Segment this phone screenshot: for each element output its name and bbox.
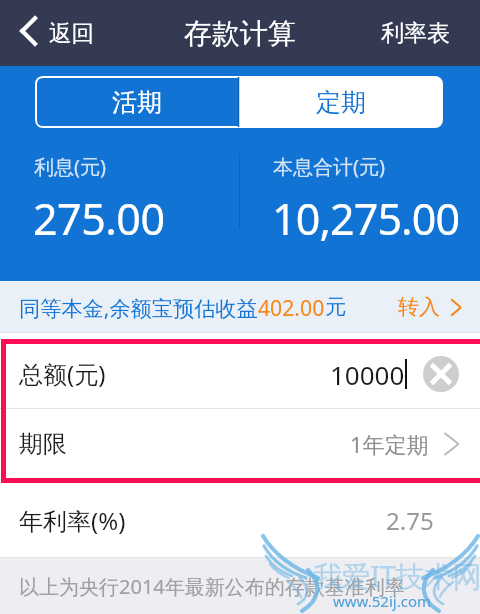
button[interactable]: 返回: [0, 8, 108, 58]
staticText: 本息合计(元): [273, 153, 385, 180]
staticText: 存款计算: [184, 16, 296, 51]
staticText: 同等本金,余额宝预估收益: [19, 293, 258, 322]
button[interactable]: 转入: [384, 285, 480, 329]
staticText: 2.75: [386, 504, 434, 537]
staticText: 总额(元): [19, 357, 106, 390]
staticText: 10000: [330, 357, 405, 392]
staticText: 期限: [19, 429, 67, 459]
button[interactable]: 清除: [423, 356, 459, 392]
staticText: 活期: [112, 87, 162, 118]
staticText: 返回: [49, 19, 94, 47]
staticText: 275.00: [33, 189, 165, 248]
staticText: 利息(元): [34, 153, 106, 180]
staticText: www.52ij.com: [333, 591, 432, 611]
staticText: 1年定期: [350, 429, 429, 459]
staticText: 402.00: [258, 293, 325, 322]
button[interactable]: 活期: [35, 76, 239, 128]
staticText: 元: [325, 294, 347, 321]
staticText: 年利率(%): [19, 504, 126, 537]
button[interactable]: 总额(元): [0, 339, 480, 408]
staticText: 定期: [316, 87, 366, 118]
button[interactable]: 利率表: [363, 7, 480, 60]
button[interactable]: 年利率(%): [0, 483, 480, 557]
staticText: 利率表: [381, 19, 450, 48]
staticText: 10,275.00: [272, 189, 460, 248]
staticText: 我爱IT技术网: [313, 556, 480, 596]
staticText: 转入: [398, 294, 440, 320]
button[interactable]: 定期: [239, 76, 443, 128]
staticText: 以上为央行2014年最新公布的存款基准利率: [19, 573, 405, 600]
button[interactable]: 期限: [0, 409, 480, 478]
